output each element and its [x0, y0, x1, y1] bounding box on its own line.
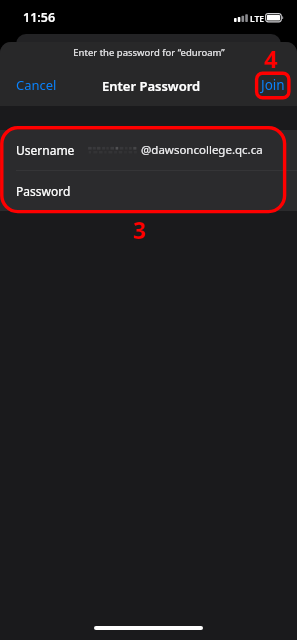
- other: Home indicator: [94, 626, 203, 630]
- staticText: 11:56: [23, 9, 56, 26]
- staticText: Enter the password for “eduroam”: [73, 46, 225, 59]
- button[interactable]: Join: [255, 67, 291, 103]
- staticText: Enter Password: [102, 77, 201, 95]
- staticText: Cancel: [16, 76, 57, 94]
- staticText: 4: [264, 42, 278, 75]
- staticText: LTE: [250, 13, 265, 25]
- button[interactable]: Cancel: [8, 67, 65, 103]
- staticText: Password: [16, 183, 71, 199]
- button[interactable]: Password: [0, 171, 297, 211]
- button[interactable]: Username: [0, 130, 297, 170]
- staticText: 3: [133, 214, 147, 245]
- staticText: Username: [16, 142, 75, 158]
- staticText: Join: [261, 76, 285, 94]
- staticText: @dawsoncollege.qc.ca: [141, 142, 263, 158]
